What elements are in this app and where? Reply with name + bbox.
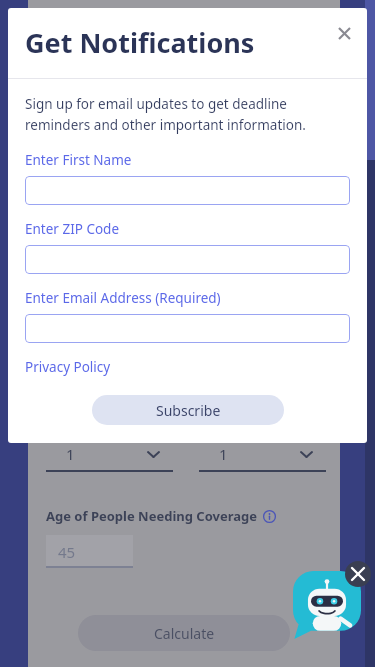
staticText: Subscribe [156,401,221,420]
staticText: Calculate [154,624,215,643]
button[interactable]: Close [329,18,359,48]
button[interactable]: Chat assistant [293,571,361,639]
staticText: Enter Email Address (Required) [25,289,221,307]
button[interactable] [25,314,350,343]
button[interactable]: Privacy Policy [25,358,111,376]
button[interactable]: 45 [46,535,133,568]
staticText: 45 [58,542,76,562]
button[interactable]: Close chat [345,561,371,587]
button[interactable]: More information [263,510,276,523]
button[interactable]: 1 [46,436,173,472]
staticText: Get Notifications [25,24,255,61]
button[interactable]: Calculate [78,615,290,651]
button[interactable] [25,176,350,205]
staticText: 1 [219,444,228,464]
staticText: coverage? [192,410,258,428]
staticText: Sign up for email updates to get deadlin… [25,95,350,134]
staticText: Enter ZIP Code [25,220,120,238]
button[interactable]: 1 [199,436,326,472]
staticText: Enter First Name [25,151,132,169]
button[interactable]: Subscribe [92,395,284,425]
staticText: Age of People Needing Coverage [46,507,258,525]
button[interactable] [25,245,350,274]
staticText: 1 [66,444,75,464]
